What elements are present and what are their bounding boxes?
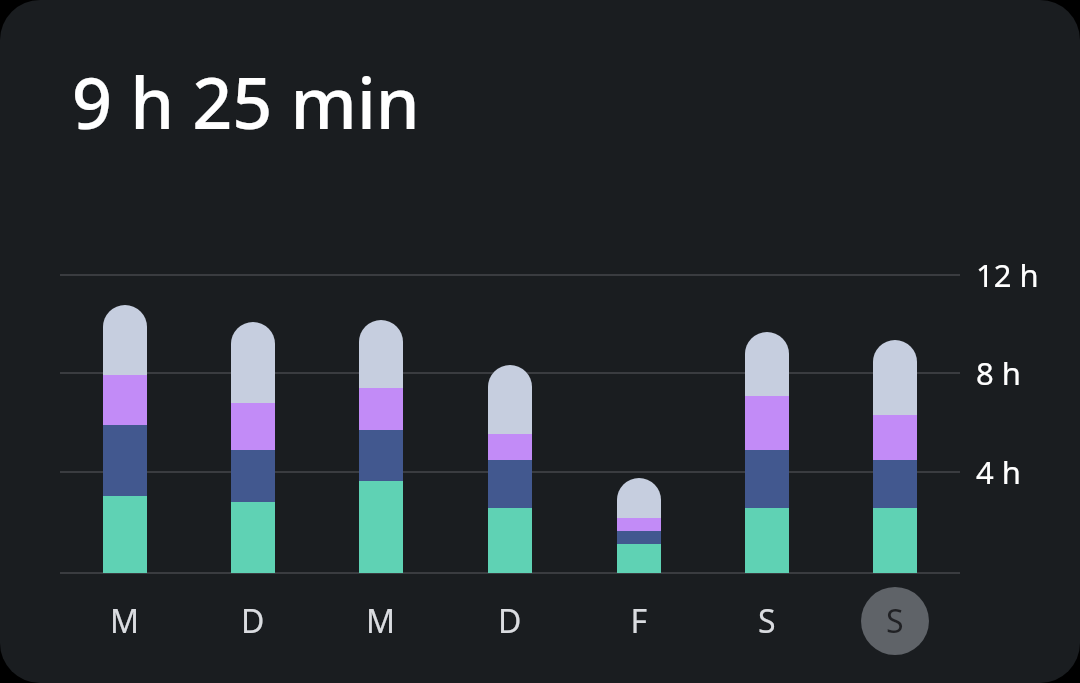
button[interactable]: Weekly sleep duration chart <box>0 0 1080 683</box>
